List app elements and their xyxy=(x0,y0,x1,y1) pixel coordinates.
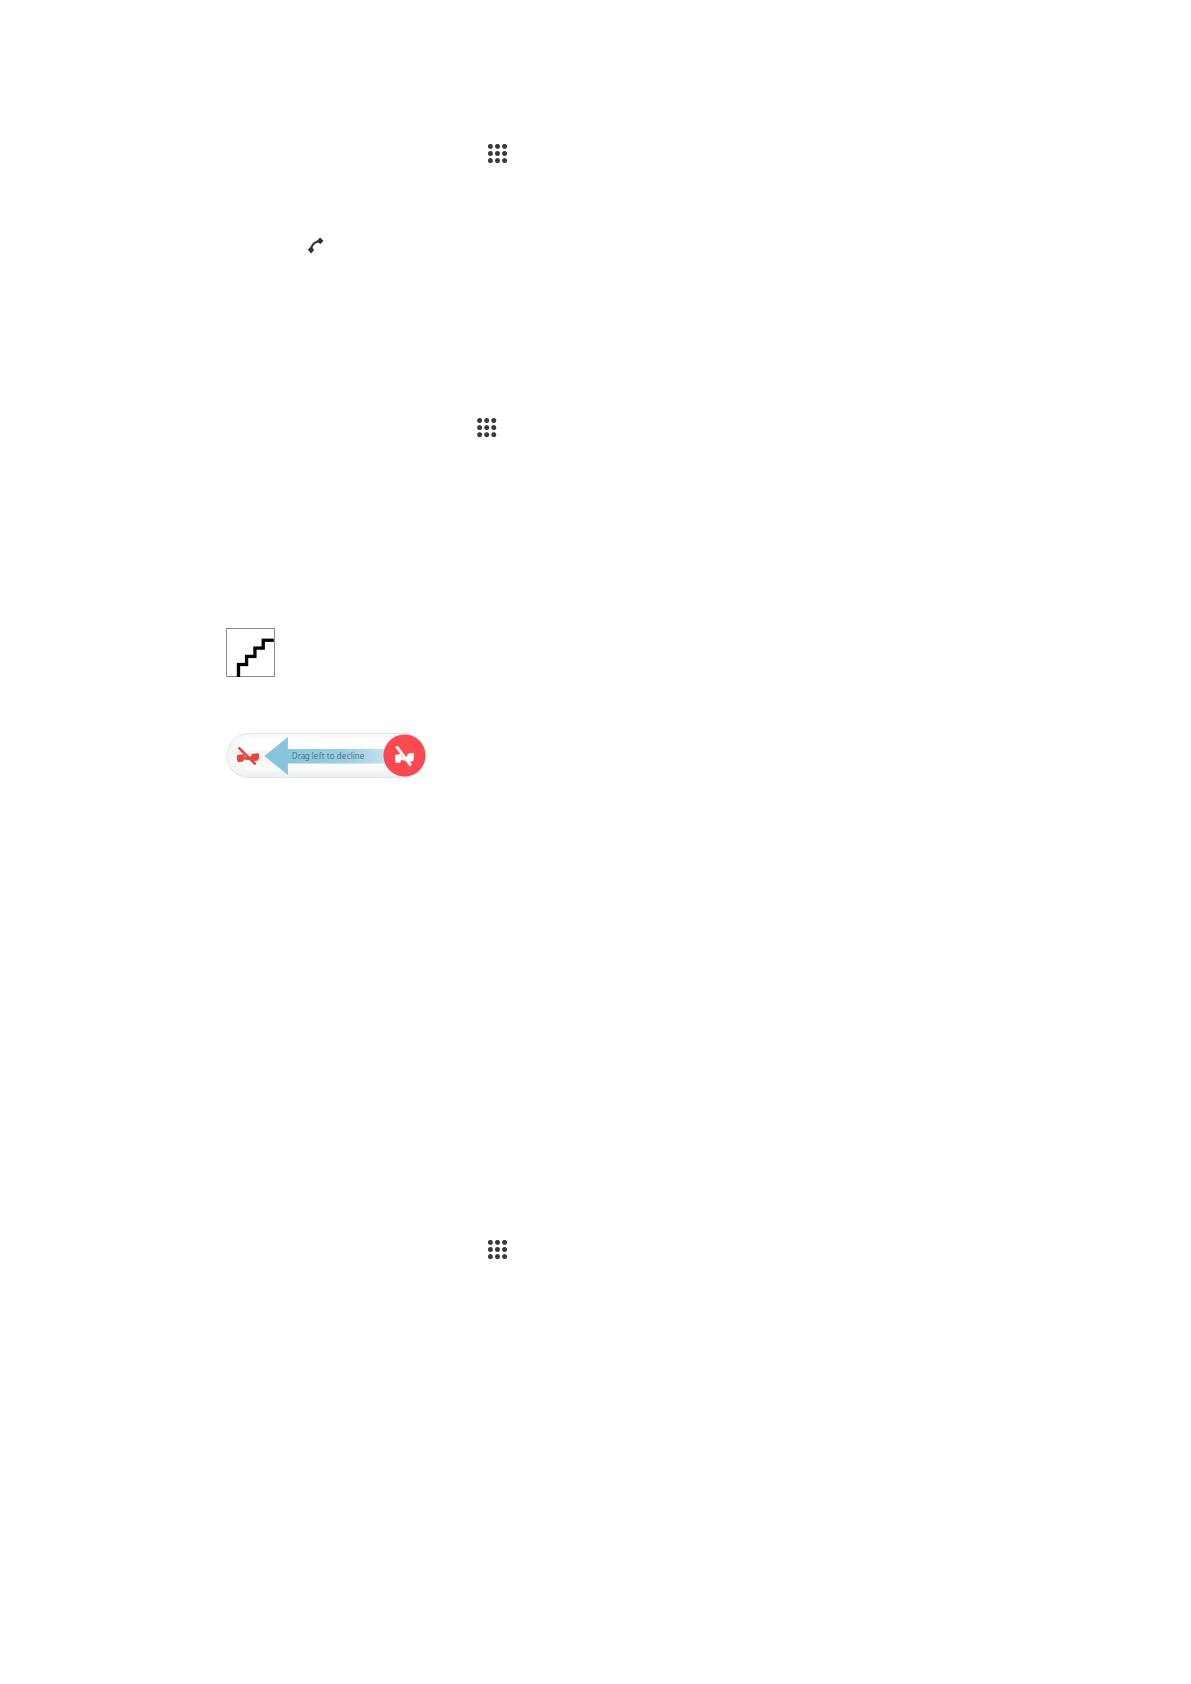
button[interactable]: Apps xyxy=(488,1240,507,1259)
button[interactable]: Call xyxy=(307,237,323,253)
button[interactable]: Apps xyxy=(488,144,507,163)
button[interactable]: Drag left to decline xyxy=(227,733,425,777)
staticText: Drag left to decline xyxy=(292,751,365,761)
button[interactable]: Apps xyxy=(477,418,496,437)
